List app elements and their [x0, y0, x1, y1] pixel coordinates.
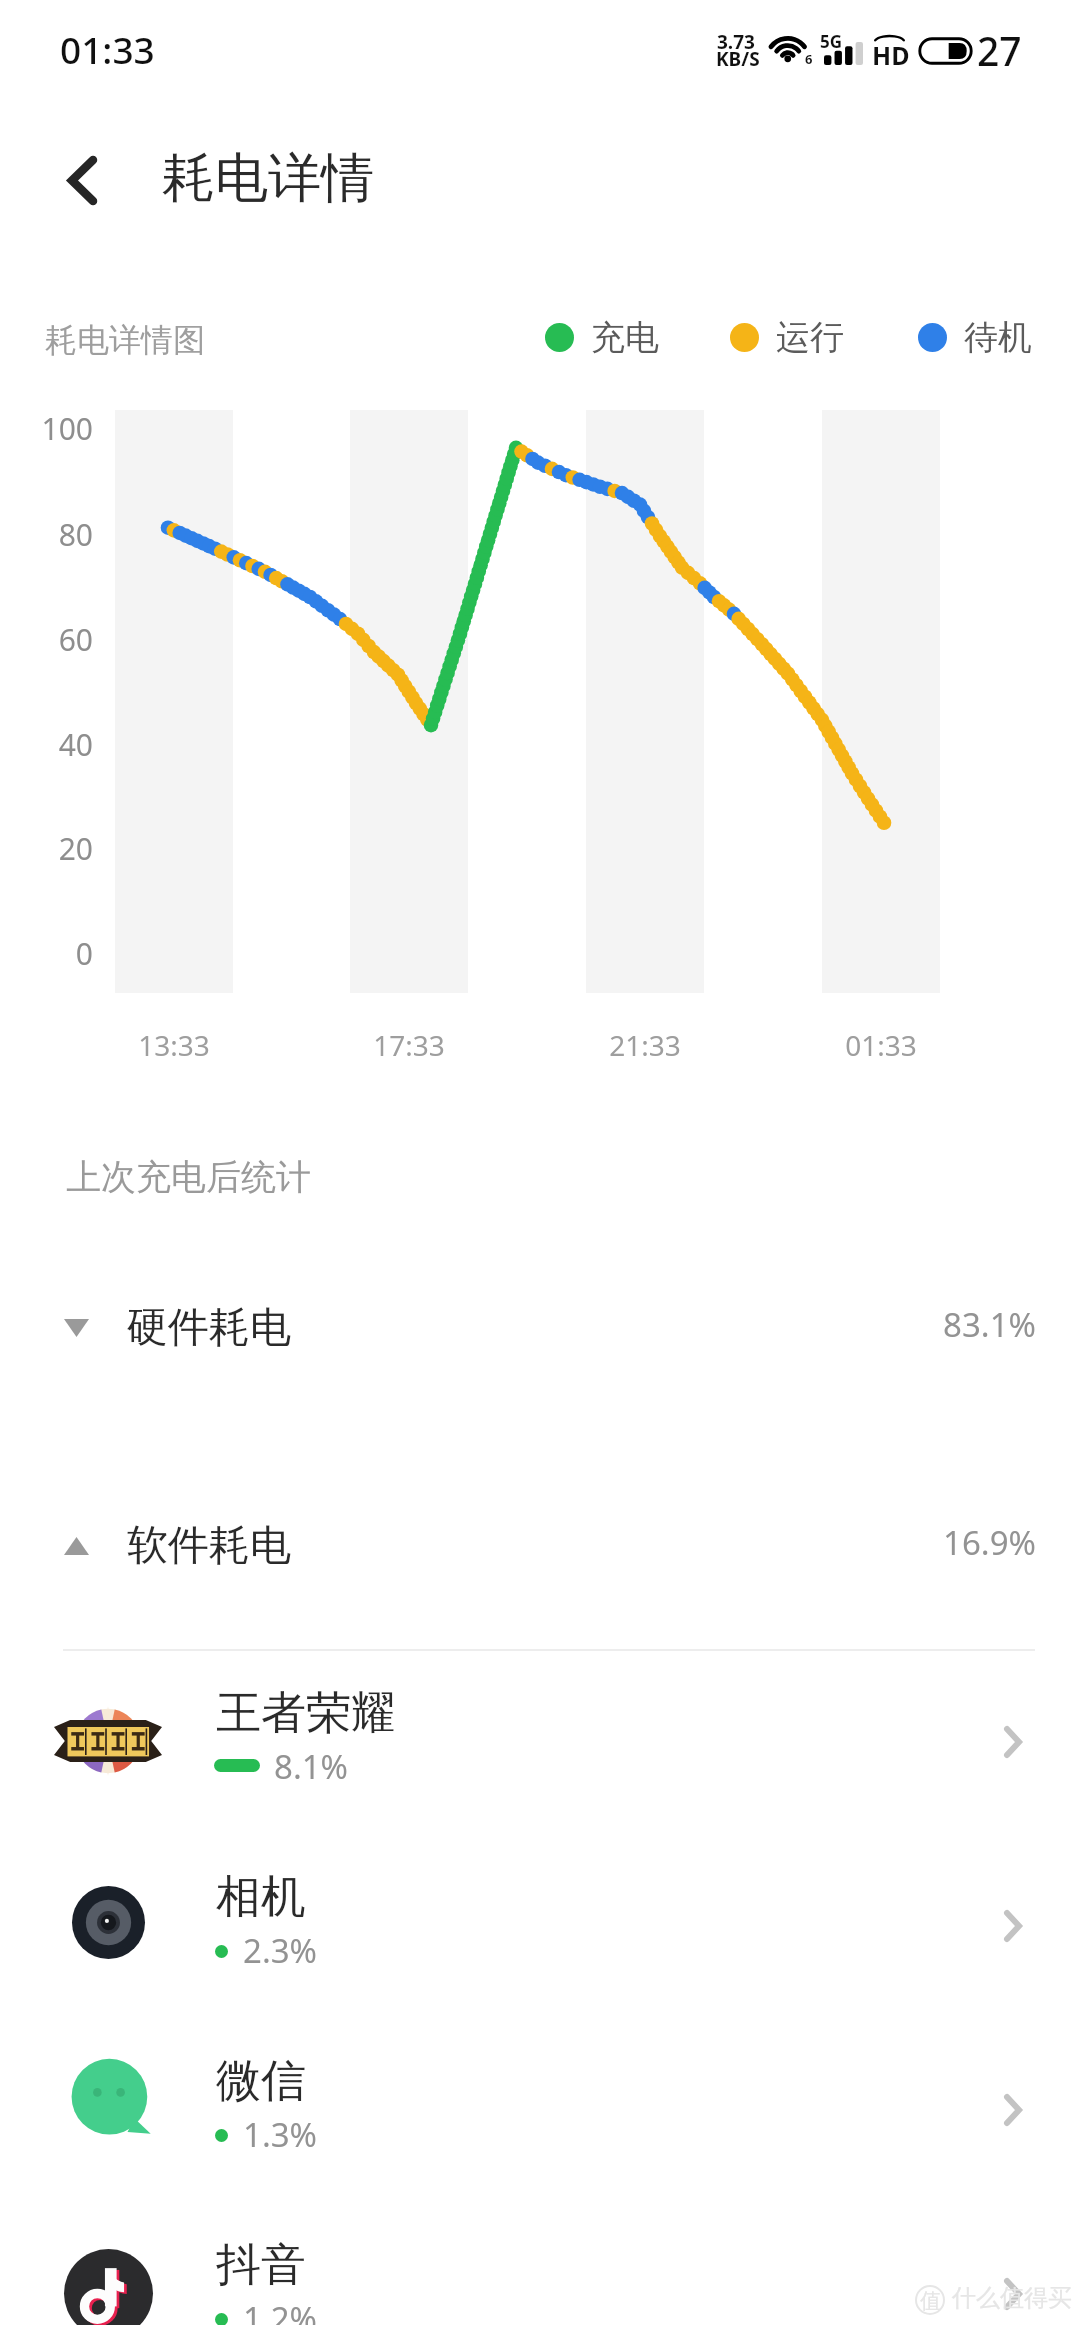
staticText: 27 — [977, 24, 1022, 77]
staticText: 耗电详情 — [162, 145, 374, 212]
staticText: 什么值得买 — [952, 2283, 1072, 2313]
staticText: 01:33 — [845, 1026, 917, 1064]
staticText: 16.9% — [943, 1520, 1036, 1565]
staticText: 相机 — [216, 1869, 306, 1926]
staticText: 抖音 — [216, 2237, 306, 2294]
staticText: 值 — [920, 2288, 941, 2314]
button[interactable]: 软件耗电 — [0, 1508, 1080, 1588]
button[interactable]: Back — [27, 125, 137, 235]
button[interactable]: 硬件耗电 — [0, 1290, 1080, 1370]
staticText: 100 — [41, 408, 93, 449]
staticText: 3.73 — [717, 29, 755, 55]
button[interactable]: 抖音 — [0, 2243, 1080, 2325]
staticText: 耗电详情图 — [45, 320, 205, 360]
staticText: 6 — [805, 50, 813, 68]
button[interactable]: 微信 — [0, 2059, 1080, 2243]
staticText: 2.3% — [243, 1928, 318, 1973]
staticText: 8.1% — [274, 1744, 349, 1789]
staticText: 王者荣耀 — [216, 1685, 396, 1742]
staticText: 5G — [820, 30, 843, 53]
button[interactable]: 王者荣耀 — [0, 1691, 1080, 1875]
staticText: 40 — [58, 724, 93, 765]
staticText: 1.2% — [243, 2296, 318, 2325]
staticText: 0 — [75, 933, 93, 974]
staticText: KB/S — [716, 46, 760, 72]
staticText: 13:33 — [138, 1026, 210, 1064]
staticText: 软件耗电 — [127, 1520, 291, 1572]
staticText: 待机 — [964, 316, 1032, 359]
staticText: 80 — [58, 514, 93, 555]
staticText: 1.3% — [243, 2112, 318, 2157]
staticText: 21:33 — [609, 1026, 681, 1064]
staticText: 83.1% — [943, 1302, 1036, 1347]
staticText: HD — [872, 38, 910, 72]
staticText: 充电 — [591, 316, 659, 359]
button[interactable]: 相机 — [0, 1875, 1080, 2059]
staticText: 运行 — [776, 316, 844, 359]
staticText: 20 — [58, 828, 93, 869]
staticText: 微信 — [216, 2053, 306, 2110]
staticText: 上次充电后统计 — [66, 1155, 311, 1199]
staticText: 60 — [58, 619, 93, 660]
staticText: 01:33 — [60, 24, 155, 74]
staticText: 17:33 — [373, 1026, 445, 1064]
staticText: 硬件耗电 — [127, 1302, 291, 1354]
